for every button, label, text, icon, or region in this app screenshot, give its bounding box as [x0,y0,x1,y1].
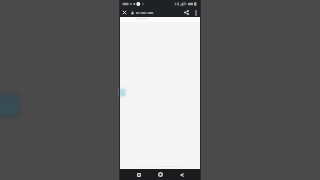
button[interactable]: Close [121,9,128,16]
button[interactable]: Back [176,169,188,180]
button[interactable]: Share [183,9,190,16]
button[interactable]: Recents [133,169,145,180]
button[interactable]: Home [154,169,166,180]
button[interactable] [131,8,153,17]
button[interactable]: More options [192,9,199,16]
